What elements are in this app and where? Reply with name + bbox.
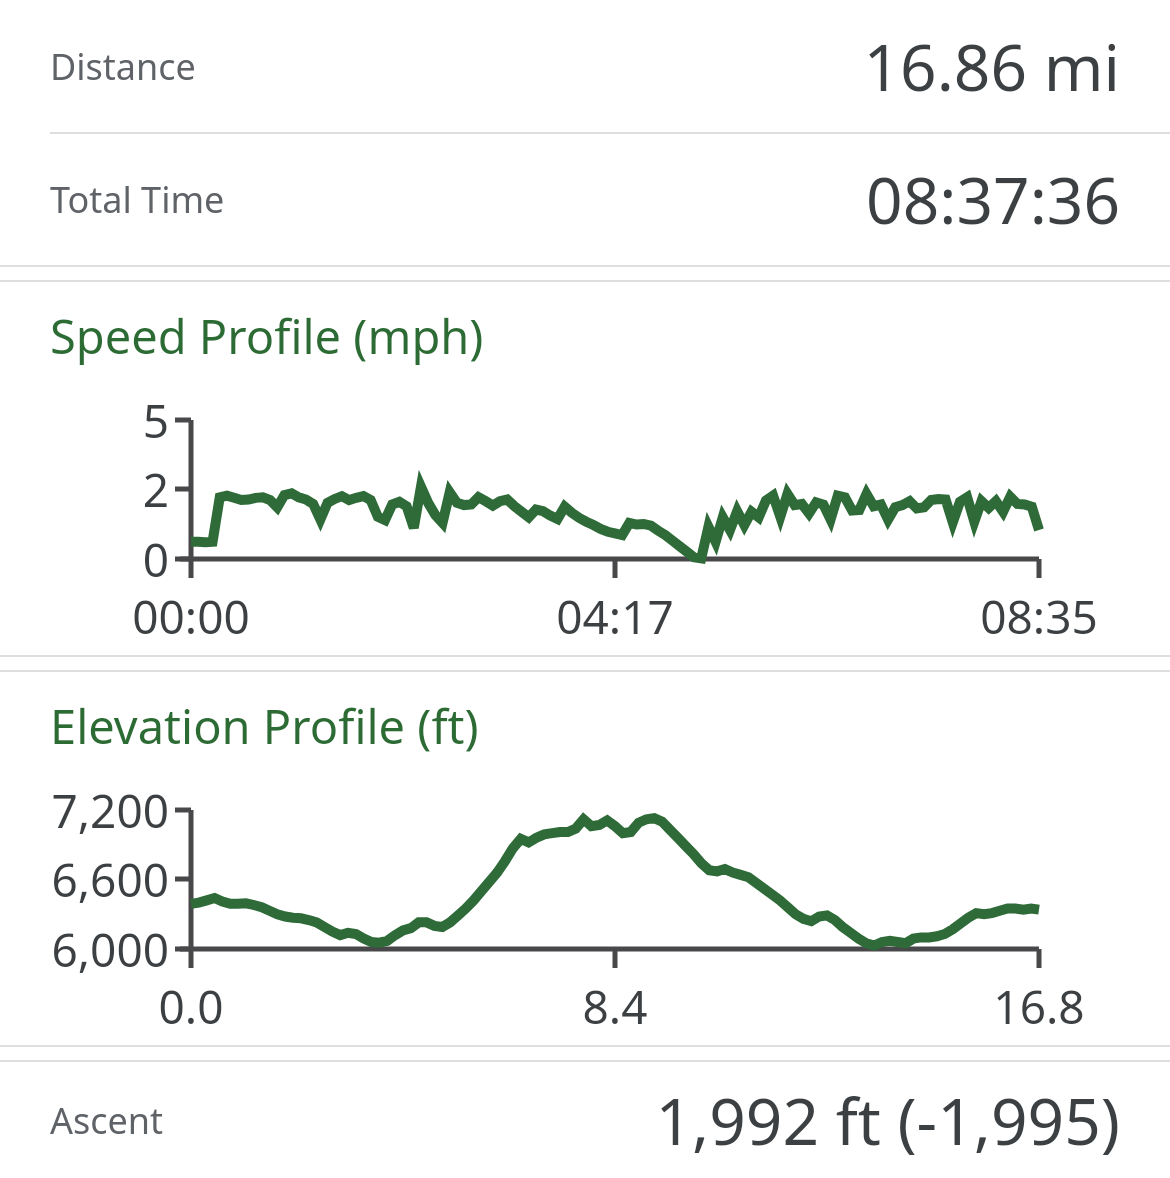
staticText: 8.4 [485,975,745,1038]
staticText: Total Time [50,175,225,224]
staticText: 08:35 [909,585,1169,648]
staticText: 04:17 [485,585,745,648]
staticText: 7,200 [19,779,169,842]
staticText: 0.0 [61,975,321,1038]
staticText: 16.8 [909,975,1169,1038]
button[interactable]: Ascent [0,1062,1170,1178]
staticText: 1,992 ft (-1,995) [655,1077,1120,1164]
staticText: Elevation Profile (ft) [50,694,479,758]
staticText: 0 [109,528,169,591]
button[interactable]: Distance [0,0,1170,132]
staticText: Ascent [50,1096,164,1145]
staticText: Distance [50,42,196,91]
staticText: 6,000 [19,918,169,981]
button[interactable]: Elevation Profile (ft) [0,672,1170,1045]
staticText: 08:37:36 [866,156,1120,243]
staticText: 16.86 mi [863,23,1120,110]
button[interactable]: Total Time [0,134,1170,265]
staticText: 2 [109,458,169,521]
staticText: 5 [109,389,169,452]
staticText: 00:00 [61,585,321,648]
button[interactable]: Speed Profile (mph) [0,282,1170,655]
staticText: Speed Profile (mph) [50,304,484,368]
staticText: 6,600 [19,848,169,911]
